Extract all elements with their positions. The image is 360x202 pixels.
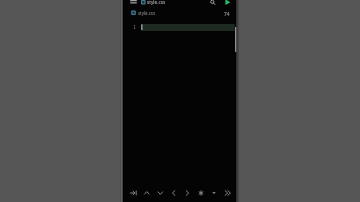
button[interactable] <box>128 9 158 17</box>
button[interactable] <box>221 9 233 17</box>
button[interactable] <box>127 188 139 198</box>
button[interactable] <box>222 188 234 198</box>
button[interactable] <box>154 188 166 198</box>
button[interactable] <box>168 188 180 198</box>
button[interactable] <box>208 188 220 198</box>
staticText: style.css <box>138 10 156 16</box>
button[interactable] <box>181 188 193 198</box>
button[interactable] <box>195 188 207 198</box>
staticText: style.css <box>147 0 166 5</box>
staticText: 1 <box>133 23 137 30</box>
button[interactable] <box>127 0 137 6</box>
button[interactable] <box>141 188 153 198</box>
button[interactable] <box>208 0 217 6</box>
staticText: 74 <box>224 11 230 17</box>
button[interactable] <box>222 0 232 6</box>
